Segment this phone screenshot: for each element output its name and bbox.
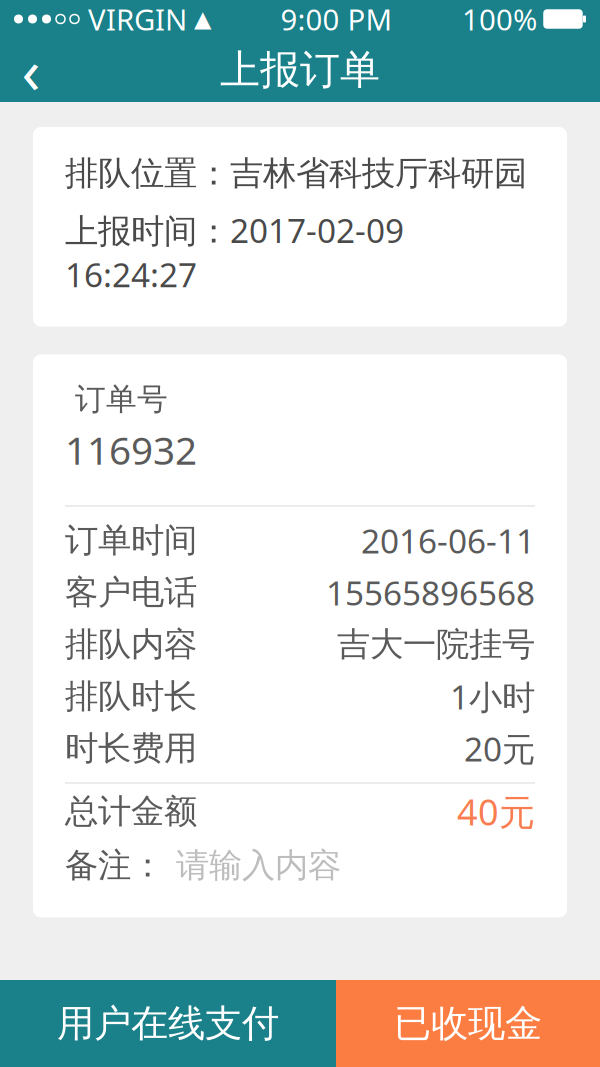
staticText: 请输入内容: [176, 845, 341, 886]
staticText: 15565896568: [326, 570, 535, 615]
staticText: 用户在线支付: [57, 1001, 279, 1046]
button[interactable]: 用户在线支付: [0, 980, 336, 1067]
staticText: 上报时间：2017-02-09 16:24:27: [65, 208, 404, 296]
staticText: 客户电话: [65, 572, 197, 613]
staticText: ‹: [21, 29, 40, 111]
staticText: 100%: [462, 0, 537, 38]
staticText: 1小时: [450, 674, 535, 719]
staticText: 已收现金: [394, 1001, 542, 1046]
staticText: 上报订单: [220, 45, 380, 94]
staticText: 2016-06-11: [361, 518, 535, 563]
staticText: 9:00 PM: [280, 0, 392, 38]
staticText: 排队位置：吉林省科技厅科研园: [65, 153, 527, 194]
staticText: 吉大一院挂号: [337, 624, 535, 665]
staticText: 排队内容: [65, 624, 197, 665]
staticText: VIRGIN: [88, 0, 187, 38]
staticText: 40元: [457, 788, 535, 835]
staticText: 时长费用: [65, 728, 197, 769]
staticText: 116932: [65, 424, 197, 475]
staticText: 总计金额: [65, 791, 197, 832]
staticText: 备注：: [65, 845, 164, 886]
button[interactable]: Back: [0, 38, 62, 102]
staticText: 订单时间: [65, 520, 197, 561]
staticText: ▲: [194, 6, 211, 32]
staticText: 20元: [464, 726, 535, 771]
staticText: 排队时长: [65, 676, 197, 717]
button[interactable]: 已收现金: [336, 980, 600, 1067]
staticText: 订单号: [75, 380, 168, 418]
